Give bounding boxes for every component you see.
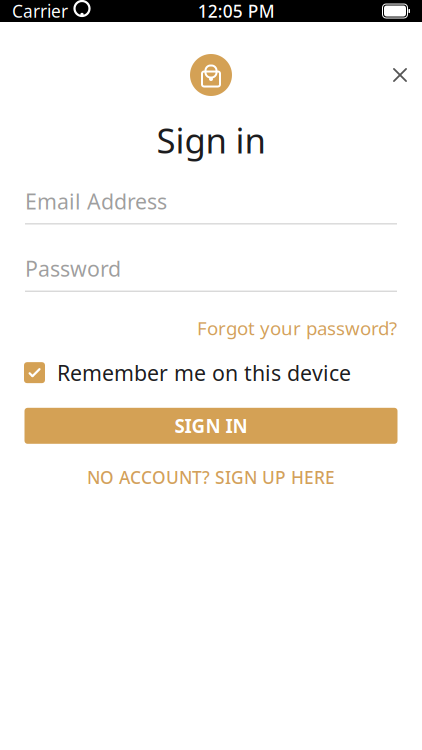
staticText: Carrier [12,0,68,22]
button[interactable]: SIGN IN [24,408,397,444]
staticText: Remember me on this device [57,358,351,387]
staticText: 12:05 PM [198,0,275,22]
button[interactable]: Remember me on this device [24,354,351,391]
staticText: SIGN IN [174,413,247,438]
staticText: Email Address [25,187,167,215]
button[interactable]: Forgot your password? [197,312,397,344]
button[interactable]: Close [378,53,422,97]
staticText: Password [25,254,121,283]
staticText: Forgot your password? [197,316,397,340]
staticText: NO ACCOUNT? SIGN UP HERE [87,466,335,489]
staticText: Sign in [156,117,265,163]
button[interactable]: NO ACCOUNT? SIGN UP HERE [77,460,345,495]
